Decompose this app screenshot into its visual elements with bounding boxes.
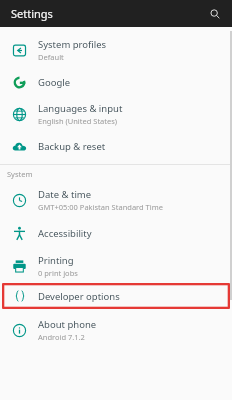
- staticText: Default: [38, 52, 64, 62]
- button[interactable]: System profiles: [0, 33, 232, 67]
- button[interactable]: Accessibility: [0, 217, 232, 249]
- staticText: 0 print jobs: [38, 268, 78, 278]
- button[interactable]: Printing: [0, 249, 232, 283]
- staticText: Languages & input: [38, 102, 123, 115]
- button[interactable]: Developer options: [2, 283, 230, 309]
- staticText: Date & time: [38, 188, 92, 201]
- staticText: Developer options: [38, 290, 120, 303]
- button[interactable]: Date & time: [0, 183, 232, 217]
- staticText: GMT+05:00 Pakistan Standard Time: [38, 202, 163, 212]
- staticText: Settings: [11, 6, 53, 21]
- button[interactable]: Search: [205, 4, 225, 24]
- button[interactable]: Google: [0, 67, 232, 97]
- staticText: About phone: [38, 318, 97, 331]
- staticText: System: [7, 169, 33, 179]
- staticText: Android 7.1.2: [38, 332, 85, 342]
- button[interactable]: About phone: [0, 313, 232, 347]
- staticText: English (United States): [38, 116, 118, 126]
- staticText: Backup & reset: [38, 140, 106, 153]
- button[interactable]: Backup & reset: [0, 131, 232, 161]
- button[interactable]: Languages & input: [0, 97, 232, 131]
- staticText: Accessibility: [38, 227, 92, 240]
- staticText: Google: [38, 76, 71, 89]
- staticText: System profiles: [38, 38, 107, 51]
- staticText: Printing: [38, 254, 74, 267]
